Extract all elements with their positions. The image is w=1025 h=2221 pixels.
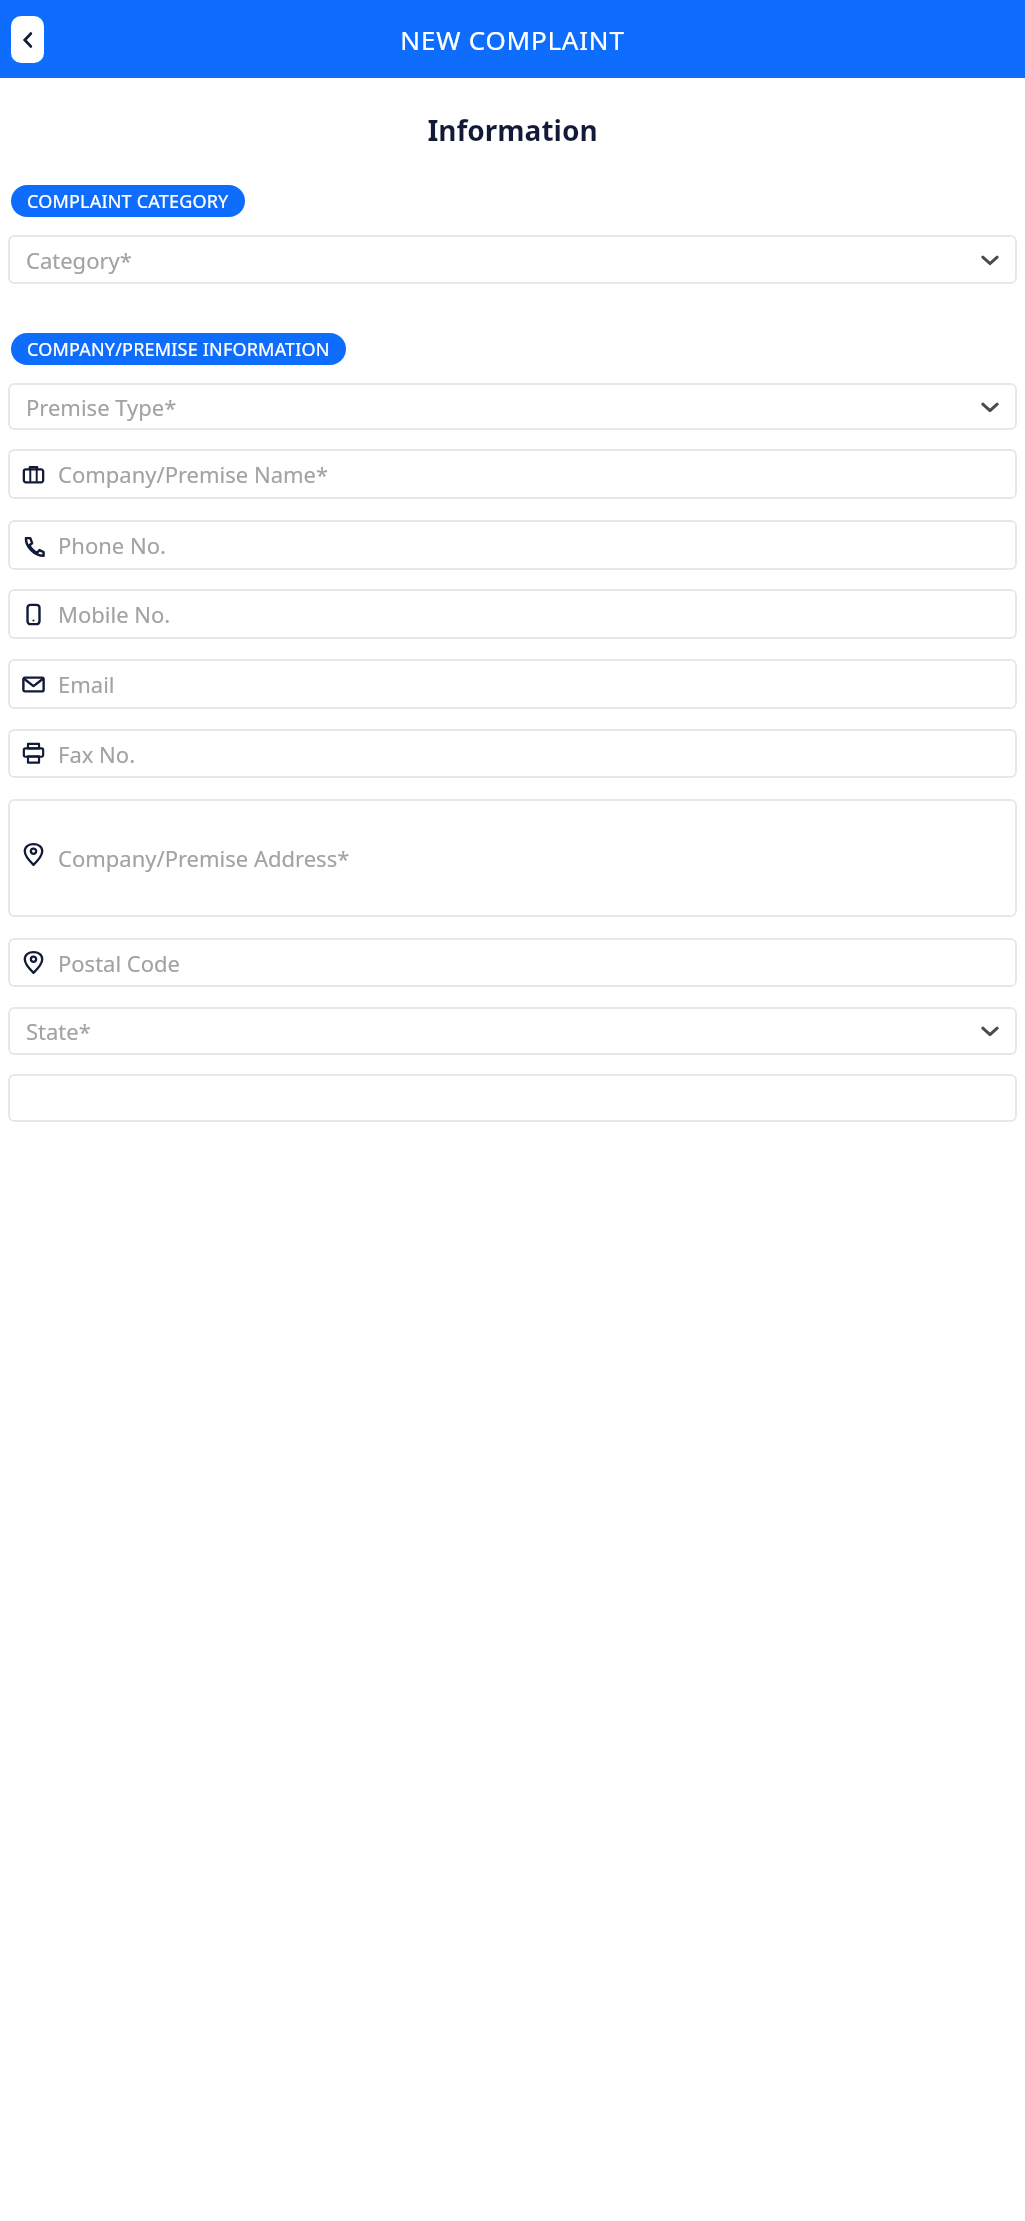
- button[interactable]: Fax No.: [8, 729, 1017, 778]
- button[interactable]: [8, 1074, 1017, 1122]
- button[interactable]: State*: [8, 1007, 1017, 1055]
- staticText: Fax No.: [58, 739, 136, 769]
- staticText: Postal Code: [58, 948, 180, 978]
- staticText: Email: [58, 669, 115, 699]
- staticText: State*: [26, 1016, 91, 1046]
- button[interactable]: Mobile No.: [8, 589, 1017, 639]
- staticText: NEW COMPLAINT: [400, 22, 625, 57]
- button[interactable]: Phone No.: [8, 520, 1017, 570]
- staticText: Company/Premise Address*: [58, 843, 350, 873]
- staticText: Mobile No.: [58, 599, 171, 629]
- staticText: COMPANY/PREMISE INFORMATION: [27, 337, 330, 362]
- staticText: COMPLAINT CATEGORY: [27, 189, 229, 214]
- button[interactable]: Postal Code: [8, 938, 1017, 987]
- button[interactable]: Company/Premise Address*: [8, 799, 1017, 917]
- staticText: Category*: [26, 245, 132, 275]
- staticText: Premise Type*: [26, 392, 177, 422]
- button[interactable]: Category*: [8, 235, 1017, 284]
- button[interactable]: Company/Premise Name*: [8, 449, 1017, 499]
- staticText: Company/Premise Name*: [58, 459, 329, 489]
- button[interactable]: Email: [8, 659, 1017, 709]
- button[interactable]: Back: [11, 16, 44, 63]
- button[interactable]: COMPLAINT CATEGORY: [11, 185, 245, 217]
- button[interactable]: Premise Type*: [8, 383, 1017, 430]
- staticText: Phone No.: [58, 530, 166, 560]
- staticText: Information: [0, 111, 1025, 149]
- button[interactable]: COMPANY/PREMISE INFORMATION: [11, 333, 346, 365]
